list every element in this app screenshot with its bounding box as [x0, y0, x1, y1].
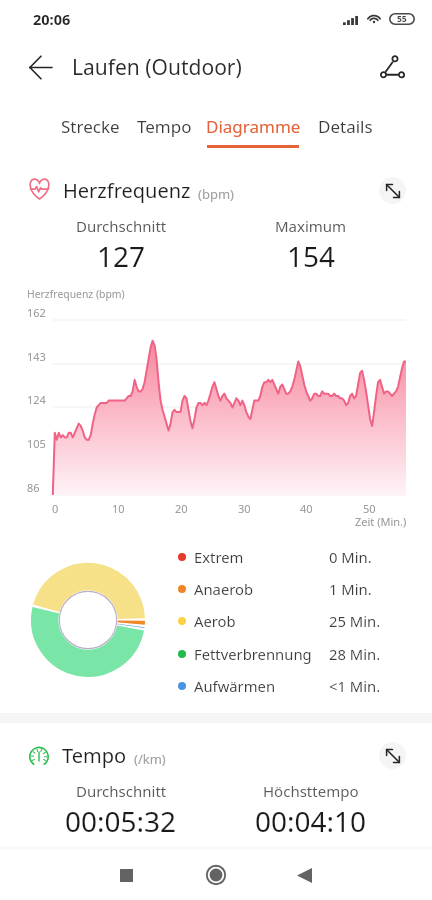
staticText: <1 Min. [329, 676, 381, 696]
staticText: Details [318, 115, 373, 138]
staticText: 143 [27, 349, 46, 364]
staticText: Durchschnitt [76, 781, 167, 801]
staticText: 124 [27, 392, 46, 407]
staticText: Strecke [61, 115, 120, 138]
staticText: 127 [97, 237, 146, 275]
button[interactable]: Details [297, 104, 393, 152]
staticText: Aerob [194, 611, 236, 631]
staticText: 28 Min. [329, 644, 381, 664]
staticText: 1 Min. [329, 579, 372, 599]
staticText: Durchschnitt [76, 216, 167, 236]
staticText: Tempo [62, 742, 127, 769]
staticText: Zeit (Min.) [355, 514, 407, 529]
staticText: (bpm) [198, 185, 234, 203]
staticText: Fettverbrennung [194, 644, 312, 664]
staticText: 105 [27, 436, 46, 451]
staticText: 0 [52, 501, 59, 516]
staticText: 154 [287, 237, 336, 275]
staticText: Laufen (Outdoor) [72, 53, 242, 82]
staticText: 20 [175, 501, 188, 516]
staticText: 162 [27, 305, 46, 320]
button[interactable]: Tempo [116, 104, 212, 152]
staticText: Herzfrequenz [63, 177, 191, 204]
staticText: 25 Min. [329, 611, 381, 631]
button[interactable]: Teilen [370, 45, 414, 89]
button[interactable]: Zurück [18, 45, 62, 89]
button[interactable]: Vergrößern [379, 742, 406, 769]
staticText: 30 [238, 501, 251, 516]
staticText: 20:06 [33, 9, 71, 29]
staticText: 0 Min. [329, 547, 372, 567]
staticText: Aufwärmen [194, 676, 276, 696]
staticText: Höchsttempo [263, 781, 359, 801]
staticText: Diagramme [206, 115, 301, 138]
staticText: (/km) [134, 750, 166, 768]
staticText: Herzfrequenz (bpm) [27, 287, 125, 301]
staticText: 50 [363, 501, 376, 516]
button[interactable]: Diagramme [205, 104, 301, 152]
staticText: Tempo [137, 115, 192, 138]
staticText: Anaerob [194, 579, 254, 599]
staticText: 55 [397, 13, 407, 25]
staticText: 86 [27, 480, 40, 495]
staticText: 00:05:32 [65, 802, 177, 840]
staticText: 10 [112, 501, 125, 516]
button[interactable]: Zurück [276, 850, 332, 900]
button[interactable]: Startseite [188, 850, 244, 900]
staticText: 40 [300, 501, 313, 516]
button[interactable]: Strecke [42, 104, 138, 152]
staticText: Extrem [194, 547, 244, 567]
staticText: Maximum [275, 216, 347, 236]
button[interactable]: Letzte Apps [98, 850, 154, 900]
button[interactable]: Vergrößern [379, 177, 406, 204]
staticText: 00:04:10 [255, 802, 367, 840]
